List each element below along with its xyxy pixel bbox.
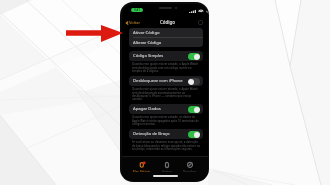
staticText: Voltar xyxy=(129,20,141,25)
button[interactable]: Apagar Dados xyxy=(129,104,203,114)
button[interactable]: Toggle on xyxy=(188,53,200,60)
button[interactable]: Alterar Código xyxy=(129,38,203,47)
staticText: Quando esse ajuste estiver ativado, o Ap… xyxy=(132,62,201,72)
staticText: Alterar Código xyxy=(133,40,162,46)
staticText: Galeria xyxy=(162,170,172,172)
staticText: Apagar Dados xyxy=(133,106,161,112)
button[interactable]: Meu Relógio xyxy=(132,157,152,173)
button[interactable]: Info xyxy=(198,20,203,25)
staticText: Meu Relógio xyxy=(133,170,151,172)
button[interactable]: Toggle off xyxy=(188,78,200,85)
staticText: Se você ativar ou desativar esse ajuste,… xyxy=(132,140,201,150)
button[interactable]: Toggle on xyxy=(188,131,200,138)
staticText: Código Simples xyxy=(133,53,164,59)
button[interactable]: Galeria xyxy=(161,157,173,173)
button[interactable]: Ativar Código xyxy=(129,28,203,37)
staticText: Código xyxy=(160,19,175,25)
staticText: Descobrir xyxy=(183,170,197,172)
button[interactable]: Código Simples xyxy=(129,51,203,61)
button[interactable]: Toggle on xyxy=(188,106,200,113)
staticText: 9:41 xyxy=(134,8,140,12)
other: Arrow pointer xyxy=(0,0,330,185)
button[interactable]: Descobrir xyxy=(182,157,198,173)
staticText: Ativar Código xyxy=(133,30,160,36)
button[interactable]: Voltar xyxy=(122,20,144,25)
staticText: Detecção de Braço xyxy=(133,131,170,137)
staticText: Desbloquear com iPhone xyxy=(133,78,183,84)
button[interactable]: Desbloquear com iPhone xyxy=(129,76,203,86)
button[interactable]: Detecção de Braço xyxy=(129,129,203,139)
staticText: Quando esse ajuste estiver ativado, os d… xyxy=(132,115,201,125)
staticText: Quando este ajuste estiver ativado, o Ap… xyxy=(132,87,201,100)
